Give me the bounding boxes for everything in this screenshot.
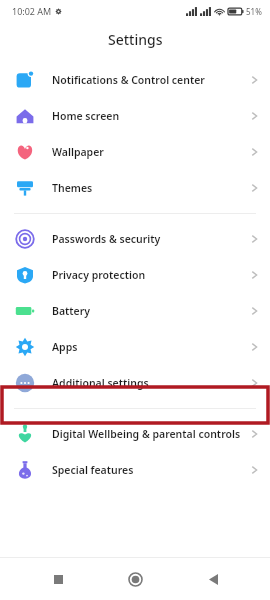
staticText: Settings: [108, 30, 163, 49]
staticText: Passwords & security: [52, 232, 161, 246]
staticText: Home screen: [52, 109, 120, 123]
button[interactable]: Battery: [0, 293, 270, 329]
button[interactable]: Wallpaper: [0, 134, 270, 170]
staticText: Additional settings: [52, 376, 149, 390]
staticText: Themes: [52, 181, 93, 195]
button[interactable]: Apps: [0, 329, 270, 365]
staticText: Wallpaper: [52, 145, 104, 159]
staticText: 10:02 AM: [12, 5, 52, 17]
button[interactable]: Privacy protection: [0, 257, 270, 293]
button[interactable]: Themes: [0, 170, 270, 206]
button[interactable]: Special features: [0, 452, 270, 488]
button[interactable]: Recent apps: [38, 559, 78, 599]
staticText: Digital Wellbeing & parental controls: [52, 427, 241, 441]
staticText: 51%: [246, 6, 262, 17]
staticText: Battery: [52, 304, 91, 318]
button[interactable]: Notifications & Control center: [0, 62, 270, 98]
button[interactable]: Digital Wellbeing & parental controls: [0, 416, 270, 452]
staticText: Apps: [52, 340, 78, 354]
staticText: Notifications & Control center: [52, 73, 205, 87]
button[interactable]: Passwords & security: [0, 221, 270, 257]
staticText: Privacy protection: [52, 268, 146, 282]
button[interactable]: Home screen: [0, 98, 270, 134]
staticText: Special features: [52, 463, 134, 477]
button[interactable]: Back: [193, 559, 233, 599]
button[interactable]: Home: [115, 559, 155, 599]
button[interactable]: Additional settings: [0, 365, 270, 401]
